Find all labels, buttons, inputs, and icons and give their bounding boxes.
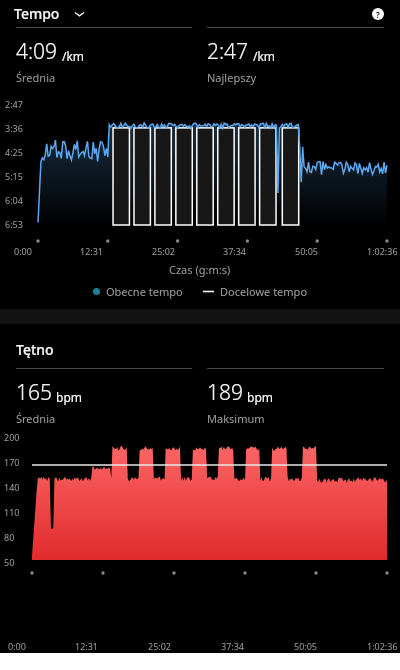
staticText: 4:09: [16, 37, 58, 66]
staticText: Tętno: [16, 340, 54, 359]
staticText: Najlepszy: [207, 70, 257, 85]
staticText: 3:36: [5, 122, 23, 134]
staticText: 2:47: [5, 98, 23, 110]
staticText: 165: [16, 378, 52, 407]
staticText: Średnia: [16, 411, 56, 426]
staticText: Obecne tempo: [106, 284, 183, 299]
staticText: 80: [4, 531, 15, 543]
staticText: 37:34: [223, 245, 247, 257]
staticText: 5:15: [5, 170, 23, 182]
staticText: 4:25: [5, 146, 23, 158]
staticText: 0:00: [8, 640, 26, 652]
staticText: 50:05: [294, 640, 318, 652]
staticText: /km: [62, 48, 85, 64]
staticText: 50:05: [295, 245, 319, 257]
staticText: 25:02: [148, 640, 172, 652]
staticText: 170: [4, 456, 20, 468]
staticText: 50: [4, 556, 15, 568]
staticText: 25:02: [152, 245, 176, 257]
staticText: 110: [4, 506, 20, 518]
button[interactable]: 189: [207, 368, 384, 426]
button[interactable]: Help: [367, 3, 389, 25]
staticText: 200: [4, 431, 20, 443]
button[interactable]: 2:47: [207, 27, 384, 85]
button[interactable]: 165: [16, 368, 192, 426]
staticText: 6:53: [5, 218, 23, 230]
staticText: 12:31: [75, 640, 99, 652]
button[interactable]: 4:09: [16, 27, 192, 85]
staticText: Tempo: [14, 4, 60, 23]
staticText: Docelowe tempo: [220, 284, 308, 299]
staticText: 37:34: [221, 640, 245, 652]
staticText: ?: [376, 9, 380, 20]
staticText: 0:00: [14, 245, 32, 257]
staticText: 140: [4, 481, 20, 493]
staticText: 189: [207, 378, 243, 407]
staticText: 1:02:36: [367, 245, 398, 257]
staticText: 2:47: [207, 37, 249, 66]
button[interactable]: Tempo: [14, 4, 86, 23]
staticText: Maksimum: [207, 411, 265, 426]
staticText: Czas (g:m:s): [169, 262, 231, 277]
staticText: 1:02:36: [367, 640, 398, 652]
staticText: 6:04: [5, 194, 23, 206]
staticText: 12:31: [80, 245, 104, 257]
staticText: Średnia: [16, 70, 56, 85]
staticText: bpm: [247, 389, 273, 405]
staticText: /km: [253, 48, 276, 64]
staticText: bpm: [56, 389, 82, 405]
